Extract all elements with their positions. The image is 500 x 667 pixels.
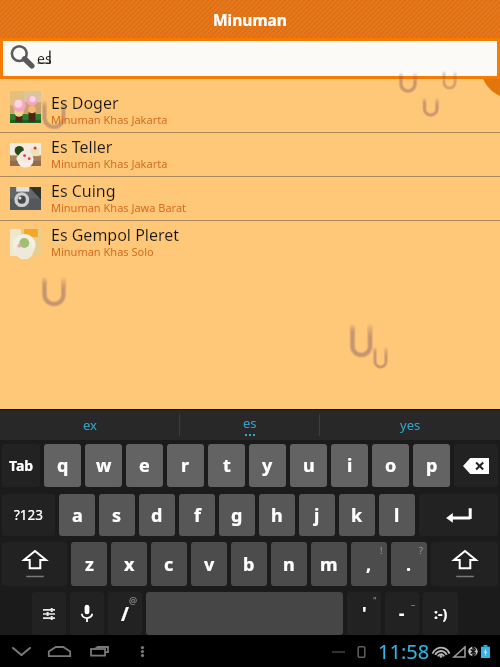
staticText: m bbox=[320, 552, 338, 577]
button[interactable]: Tab bbox=[2, 444, 40, 487]
button[interactable]: More options bbox=[124, 635, 160, 667]
button[interactable]: ! bbox=[351, 542, 387, 586]
button[interactable]: w bbox=[85, 444, 122, 487]
staticText: o bbox=[385, 453, 397, 478]
button[interactable]: c bbox=[151, 542, 187, 586]
button[interactable]: p bbox=[413, 444, 450, 487]
button[interactable]: Shift bbox=[431, 542, 498, 586]
staticText: n bbox=[283, 552, 295, 577]
button[interactable]: " bbox=[347, 592, 381, 635]
button[interactable]: q bbox=[44, 444, 81, 487]
button[interactable]: Es Gempol Pleret bbox=[0, 221, 500, 265]
button[interactable]: _ bbox=[385, 592, 419, 635]
button[interactable]: z bbox=[71, 542, 107, 586]
button[interactable]: es bbox=[3, 41, 497, 76]
button[interactable]: Home bbox=[40, 635, 79, 667]
button[interactable]: ?123 bbox=[2, 494, 55, 536]
button[interactable]: Keyboard settings bbox=[32, 592, 66, 635]
button[interactable]: Es Cuing bbox=[0, 177, 500, 221]
staticText: Es Cuing bbox=[51, 180, 116, 202]
staticText: _ bbox=[411, 594, 415, 606]
button[interactable]: @ bbox=[108, 592, 142, 635]
button[interactable]: yes bbox=[320, 410, 500, 440]
button[interactable]: b bbox=[231, 542, 267, 586]
staticText: k bbox=[351, 503, 363, 528]
button[interactable]: Hide keyboard bbox=[2, 635, 40, 667]
button[interactable]: r bbox=[167, 444, 204, 487]
button[interactable]: Es Teller bbox=[0, 133, 500, 177]
staticText: h bbox=[271, 503, 283, 528]
button[interactable]: a bbox=[59, 494, 95, 536]
button[interactable]: t bbox=[208, 444, 245, 487]
button[interactable]: n bbox=[271, 542, 307, 586]
staticText: q bbox=[57, 453, 69, 478]
staticText: , bbox=[366, 552, 372, 577]
button[interactable]: u bbox=[290, 444, 327, 487]
button[interactable]: :-) bbox=[423, 592, 458, 635]
button[interactable]: Es Doger bbox=[0, 89, 500, 133]
staticText: r bbox=[181, 453, 190, 478]
button[interactable]: k bbox=[339, 494, 375, 536]
staticText: l bbox=[394, 503, 400, 528]
staticText: w bbox=[96, 453, 112, 478]
staticText: e bbox=[139, 453, 150, 478]
staticText: z bbox=[85, 552, 94, 577]
staticText: Minuman Khas Jakarta bbox=[51, 112, 168, 127]
button[interactable]: es bbox=[180, 410, 319, 440]
staticText: es bbox=[243, 414, 257, 432]
staticText: Tab bbox=[9, 456, 34, 475]
button[interactable]: o bbox=[372, 444, 409, 487]
button[interactable]: h bbox=[259, 494, 295, 536]
staticText: Es Gempol Pleret bbox=[51, 224, 180, 246]
button[interactable]: l bbox=[379, 494, 415, 536]
staticText: ! bbox=[380, 544, 383, 556]
button[interactable]: Voice input bbox=[70, 592, 104, 635]
staticText: y bbox=[262, 453, 273, 478]
button[interactable]: d bbox=[139, 494, 175, 536]
staticText: p bbox=[426, 453, 438, 478]
staticText: Es Teller bbox=[51, 136, 113, 158]
staticText: x bbox=[124, 552, 135, 577]
staticText: . bbox=[406, 552, 412, 577]
staticText: / bbox=[121, 601, 129, 627]
button[interactable]: e bbox=[126, 444, 163, 487]
button[interactable]: g bbox=[219, 494, 255, 536]
staticText: ?123 bbox=[14, 506, 44, 524]
staticText: @ bbox=[129, 594, 138, 606]
staticText: Es Doger bbox=[51, 92, 119, 114]
staticText: es bbox=[37, 49, 52, 68]
staticText: ' bbox=[362, 602, 367, 625]
staticText: :-) bbox=[434, 604, 448, 623]
staticText: Minuman bbox=[213, 9, 287, 30]
button[interactable]: x bbox=[111, 542, 147, 586]
button[interactable]: Recent apps bbox=[80, 635, 118, 667]
staticText: d bbox=[151, 503, 163, 528]
button[interactable]: ? bbox=[391, 542, 427, 586]
staticText: v bbox=[204, 552, 215, 577]
staticText: 11:58 bbox=[378, 638, 430, 665]
button[interactable]: f bbox=[179, 494, 215, 536]
button[interactable]: Enter bbox=[419, 494, 498, 536]
staticText: i bbox=[347, 453, 353, 478]
staticText: s bbox=[112, 503, 122, 528]
staticText: b bbox=[243, 552, 255, 577]
button[interactable]: ex bbox=[0, 410, 179, 440]
button[interactable]: j bbox=[299, 494, 335, 536]
button[interactable]: v bbox=[191, 542, 227, 586]
staticText: Minuman Khas Solo bbox=[51, 244, 154, 259]
staticText: yes bbox=[400, 416, 421, 434]
staticText: " bbox=[373, 594, 377, 606]
button[interactable]: Backspace bbox=[454, 444, 498, 487]
button[interactable]: y bbox=[249, 444, 286, 487]
staticText: - bbox=[399, 602, 405, 625]
staticText: g bbox=[231, 503, 243, 528]
staticText: f bbox=[194, 503, 201, 528]
staticText: t bbox=[223, 453, 231, 478]
button[interactable]: s bbox=[99, 494, 135, 536]
button[interactable]: i bbox=[331, 444, 368, 487]
button[interactable]: Shift bbox=[2, 542, 67, 586]
staticText: a bbox=[72, 503, 83, 528]
button[interactable]: m bbox=[311, 542, 347, 586]
staticText: Minuman Khas Jawa Barat bbox=[51, 200, 187, 215]
